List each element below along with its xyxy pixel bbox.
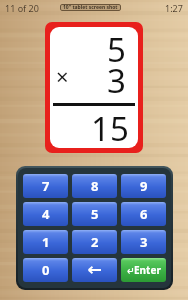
button[interactable]: 6 [121,202,166,226]
staticText: 4 [42,205,50,223]
button[interactable]: 0 [23,258,68,282]
button[interactable]: 9 [121,174,166,198]
staticText: 11 of 20 [5,2,39,14]
staticText: 6 [140,205,148,223]
staticText: 1:27 [165,2,183,14]
button[interactable]: Backspace [72,258,117,282]
staticText: 8 [91,177,99,195]
staticText: 1 [42,233,50,251]
button[interactable]: 2 [72,230,117,254]
button[interactable]: 7 [23,174,68,198]
staticText: 10" tablet screen shot [63,4,118,11]
staticText: × [56,61,69,91]
staticText: Enter [134,263,161,277]
staticText: 15 [91,106,129,148]
button[interactable]: Enter [121,258,166,282]
staticText: 0 [42,261,50,279]
staticText: 2 [91,233,99,251]
button[interactable]: 5 [45,22,143,153]
staticText: 3 [140,233,148,251]
button[interactable]: 3 [121,230,166,254]
staticText: 5 [91,205,99,223]
staticText: 3 [107,58,126,103]
button[interactable]: 8 [72,174,117,198]
button[interactable]: 1 [23,230,68,254]
button[interactable]: 4 [23,202,68,226]
button[interactable]: 5 [72,202,117,226]
staticText: 5 [107,27,126,72]
staticText: 9 [140,177,148,195]
staticText: 7 [42,177,50,195]
